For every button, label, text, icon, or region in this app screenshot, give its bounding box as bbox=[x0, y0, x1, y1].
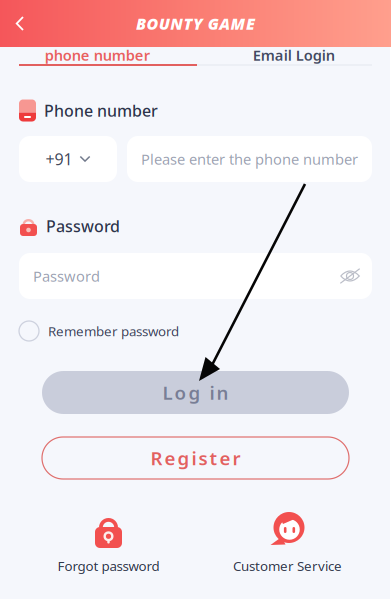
button[interactable]: Remember password bbox=[19, 319, 179, 343]
button[interactable]: Email Login bbox=[195, 47, 391, 63]
button[interactable]: phone number bbox=[0, 47, 195, 63]
staticText: Phone number bbox=[44, 100, 158, 121]
button[interactable]: Please enter the phone number bbox=[127, 136, 372, 182]
staticText: Customer Service bbox=[233, 557, 342, 575]
button[interactable]: Show password bbox=[335, 259, 365, 293]
staticText: phone number bbox=[45, 45, 150, 65]
staticText: Please enter the phone number bbox=[141, 149, 358, 169]
staticText: Password bbox=[46, 215, 120, 237]
staticText: Remember password bbox=[48, 322, 179, 340]
button[interactable]: Log in bbox=[42, 371, 349, 414]
button[interactable]: Back bbox=[0, 0, 41, 47]
staticText: BOUNTY GAME bbox=[136, 13, 255, 34]
staticText: Password bbox=[33, 266, 100, 286]
button[interactable]: Customer Service bbox=[198, 512, 377, 575]
staticText: Register bbox=[150, 446, 240, 470]
button[interactable]: +91 bbox=[19, 136, 117, 182]
staticText: +91 bbox=[45, 148, 72, 170]
staticText: Forgot password bbox=[57, 557, 159, 575]
staticText: Email Login bbox=[253, 45, 335, 65]
button[interactable]: Register bbox=[42, 437, 349, 479]
button[interactable]: Forgot password bbox=[19, 512, 198, 575]
staticText: Log in bbox=[162, 380, 228, 405]
